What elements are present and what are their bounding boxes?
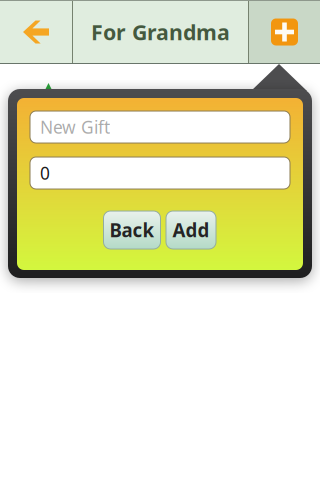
staticText: Add bbox=[172, 218, 209, 242]
button[interactable]: New Gift bbox=[30, 111, 290, 143]
staticText: Back bbox=[109, 218, 154, 242]
staticText: For Grandma bbox=[91, 18, 230, 46]
button[interactable]: Add bbox=[166, 211, 216, 249]
button[interactable]: Add gift bbox=[249, 0, 320, 64]
staticText: 0 bbox=[40, 161, 50, 184]
button[interactable]: For Grandma bbox=[73, 0, 248, 64]
button[interactable]: Back bbox=[103, 211, 160, 249]
button[interactable]: 0 bbox=[30, 157, 290, 189]
staticText: New Gift bbox=[40, 115, 110, 138]
button[interactable]: Back bbox=[0, 0, 72, 64]
